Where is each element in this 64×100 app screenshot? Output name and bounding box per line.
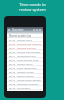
staticText: routine task finished correctly bbox=[17, 50, 42, 53]
button[interactable]: 09:14 bbox=[7, 66, 43, 70]
staticText: Time needs to review system bbox=[19, 2, 46, 12]
staticText: 09:17 bbox=[9, 78, 16, 81]
button[interactable]: 09:19 bbox=[7, 86, 43, 90]
staticText: session token renewed fine bbox=[17, 62, 42, 65]
button[interactable]: 08:03 bbox=[7, 42, 43, 46]
staticText: background sync completed ok bbox=[17, 54, 42, 57]
staticText: warning disk usage is high bbox=[17, 42, 42, 45]
button[interactable]: Action bbox=[36, 29, 38, 31]
staticText: log rotation completed bbox=[17, 86, 42, 89]
staticText: cache refresh done quickly bbox=[17, 58, 42, 61]
button[interactable]: 09:17 bbox=[7, 78, 43, 82]
staticText: 08:03 bbox=[9, 42, 16, 45]
staticText: 07:12 bbox=[9, 38, 16, 41]
staticText: 09:10 bbox=[9, 50, 16, 53]
button[interactable]: 09:10 bbox=[7, 50, 43, 54]
button[interactable]: 07:12 bbox=[7, 38, 43, 42]
button[interactable]: 08:21 bbox=[7, 46, 43, 50]
staticText: 08:21 bbox=[9, 46, 16, 49]
button[interactable]: 09:12 bbox=[7, 58, 43, 62]
staticText: 09:12 bbox=[9, 58, 16, 61]
button[interactable]: 09:11 bbox=[7, 54, 43, 58]
staticText: warning memory pressure up bbox=[17, 46, 42, 49]
button[interactable]: 09:13 bbox=[7, 62, 43, 66]
button[interactable]: 09:18 bbox=[7, 82, 43, 86]
staticText: network probe returned ok bbox=[17, 70, 42, 73]
staticText: config reload applied now bbox=[17, 78, 42, 81]
staticText: 09:11 bbox=[9, 54, 16, 57]
staticText: 09:18 bbox=[9, 82, 16, 85]
button[interactable]: 09:16 bbox=[7, 74, 43, 78]
button[interactable]: Action bbox=[39, 29, 41, 31]
staticText: 09:15 bbox=[9, 70, 16, 73]
staticText: index rebuild has finished bbox=[17, 66, 42, 69]
staticText: Overview bbox=[12, 28, 24, 32]
staticText: Recent activity log summary bbox=[9, 34, 43, 37]
staticText: 09:16 bbox=[9, 74, 16, 77]
staticText: 09:19 bbox=[9, 86, 16, 89]
staticText: 09:13 bbox=[9, 62, 16, 65]
button[interactable]: 09:15 bbox=[7, 70, 43, 74]
staticText: system check completed now bbox=[17, 38, 42, 41]
button[interactable]: Action bbox=[33, 29, 35, 31]
staticText: 09:14 bbox=[9, 66, 16, 69]
staticText: heartbeat received normally bbox=[17, 82, 42, 85]
staticText: metrics upload completed bbox=[17, 74, 42, 77]
